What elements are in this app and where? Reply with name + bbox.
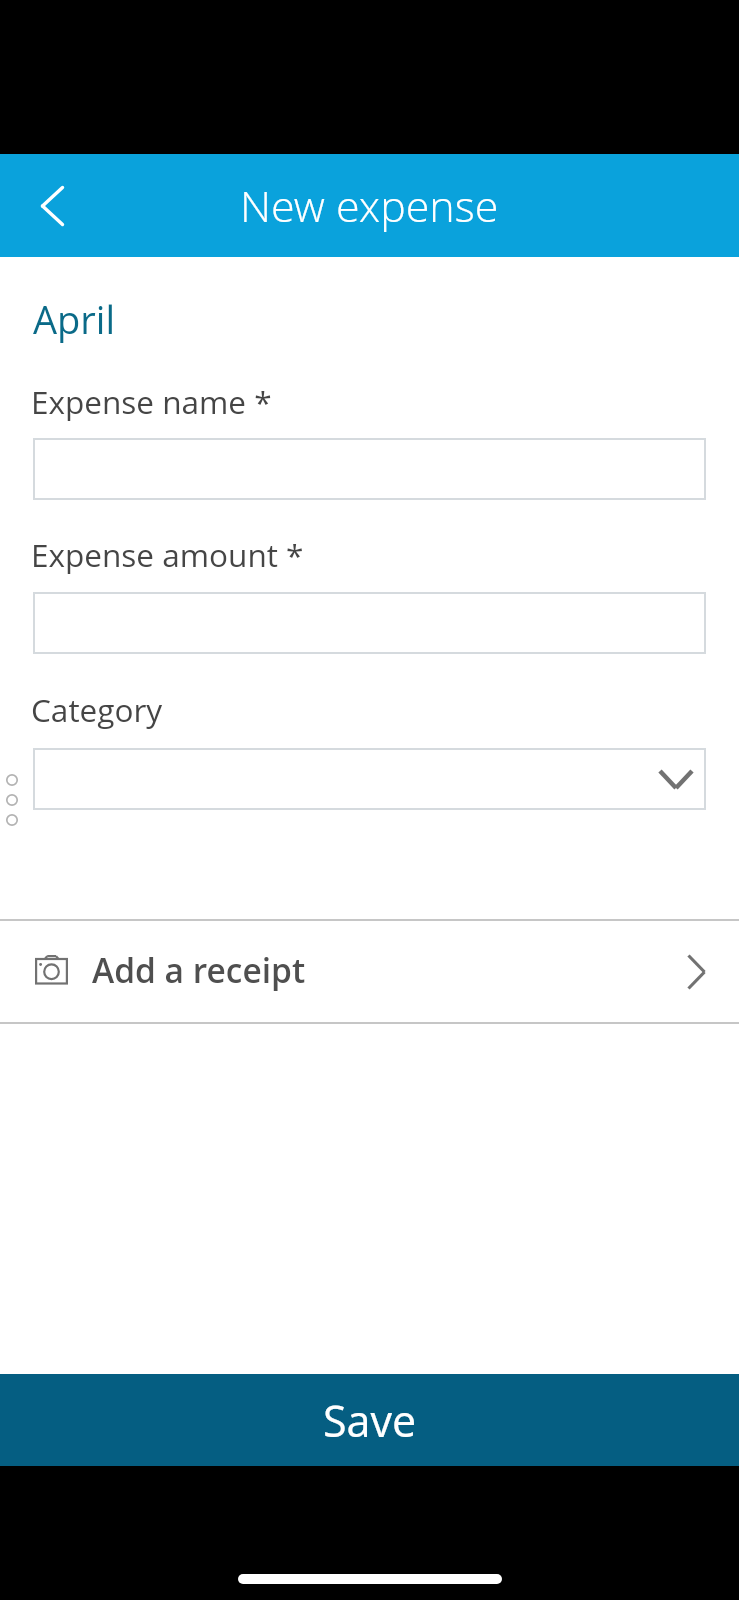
staticText: Expense name *: [31, 380, 272, 423]
button[interactable]: [33, 592, 706, 654]
staticText: Expense amount *: [31, 533, 304, 576]
button[interactable]: [33, 438, 706, 500]
staticText: April: [33, 293, 116, 345]
staticText: New expense: [240, 176, 499, 235]
staticText: Save: [323, 1391, 417, 1450]
staticText: Category: [31, 688, 163, 731]
button[interactable]: Category dropdown: [33, 748, 706, 810]
staticText: Add a receipt: [92, 947, 306, 993]
button[interactable]: Back: [10, 154, 94, 257]
button[interactable]: Save: [0, 1374, 739, 1466]
button[interactable]: Add a receipt: [0, 921, 739, 1023]
